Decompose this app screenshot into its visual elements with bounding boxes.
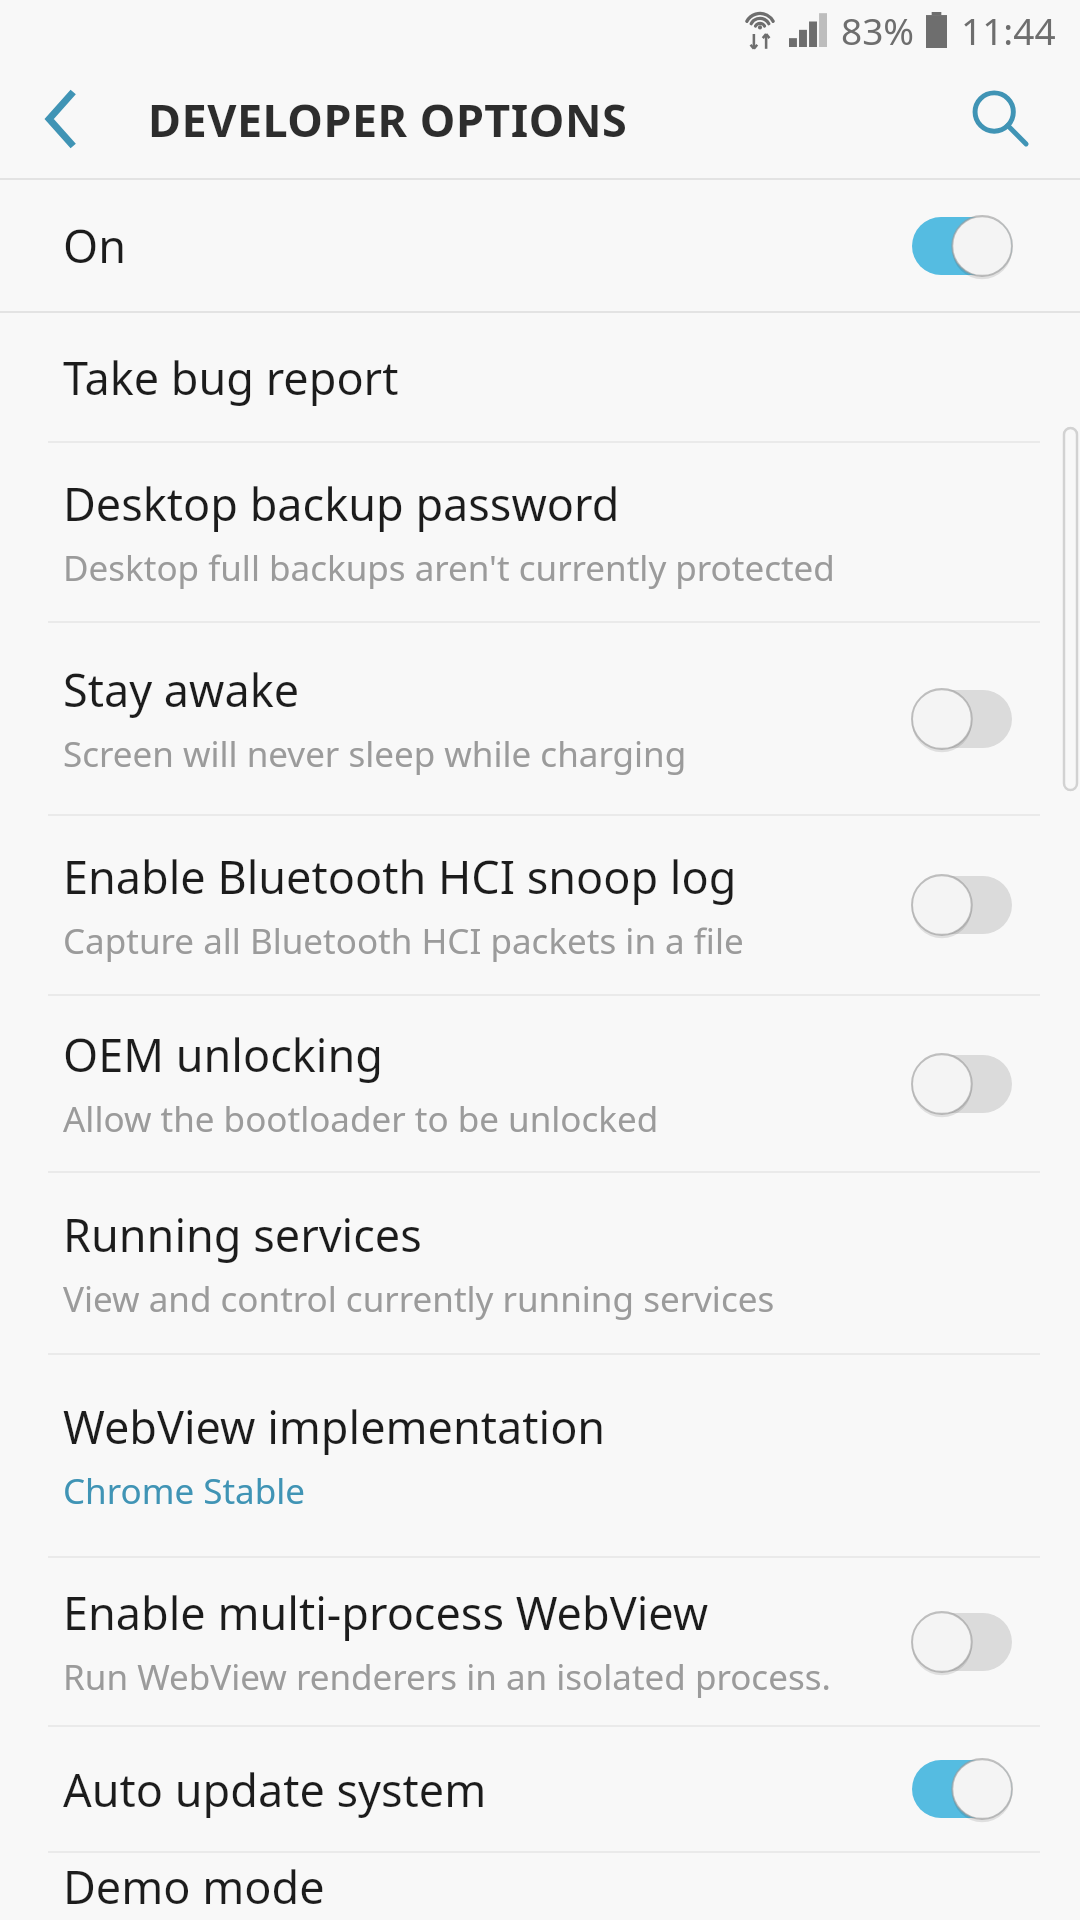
staticText: Take bug report [63,347,399,408]
button[interactable]: Enable Bluetooth HCI snoop log [0,816,1080,994]
staticText: Demo mode [63,1856,325,1917]
button[interactable]: Desktop backup password [0,443,1080,621]
button[interactable]: Navigate up [24,81,100,157]
staticText: Enable Bluetooth HCI snoop log [63,846,737,907]
button[interactable]: On switch [910,200,1014,292]
staticText: 11:44 [961,5,1056,55]
staticText: Running services [63,1204,422,1265]
staticText: Chrome Stable [63,1467,306,1515]
button[interactable]: WebView implementation [0,1355,1080,1556]
staticText: DEVELOPER OPTIONS [148,89,628,150]
button[interactable]: OEM unlocking [0,996,1080,1171]
staticText: WebView implementation [63,1396,606,1457]
staticText: Run WebView renderers in an isolated pro… [63,1653,831,1701]
staticText: View and control currently running servi… [63,1275,775,1323]
button[interactable]: Running services [0,1173,1080,1353]
staticText: Desktop backup password [63,473,620,534]
staticText: Allow the bootloader to be unlocked [63,1095,659,1143]
staticText: Enable multi-process WebView [63,1582,709,1643]
button[interactable]: On [0,180,1080,311]
button[interactable]: Demo mode [0,1853,1080,1920]
staticText: Desktop full backups aren't currently pr… [63,544,835,592]
staticText: Screen will never sleep while charging [63,730,687,778]
button[interactable]: Enable multi-process WebView switch [910,1596,1014,1688]
button[interactable]: Stay awake [0,623,1080,814]
staticText: 83% [841,5,915,55]
button[interactable]: Auto update system [0,1727,1080,1851]
staticText: Auto update system [63,1759,487,1820]
button[interactable]: Search [954,73,1046,165]
button[interactable]: Take bug report [0,313,1080,441]
button[interactable]: Auto update system switch [910,1743,1014,1835]
button[interactable]: Stay awake switch [910,673,1014,765]
staticText: On [63,215,126,276]
button[interactable]: Enable Bluetooth HCI snoop log switch [910,859,1014,951]
staticText: Stay awake [63,659,300,720]
staticText: Capture all Bluetooth HCI packets in a f… [63,917,744,965]
staticText: OEM unlocking [63,1024,383,1085]
button[interactable]: Enable multi-process WebView [0,1558,1080,1725]
button[interactable]: OEM unlocking switch [910,1038,1014,1130]
